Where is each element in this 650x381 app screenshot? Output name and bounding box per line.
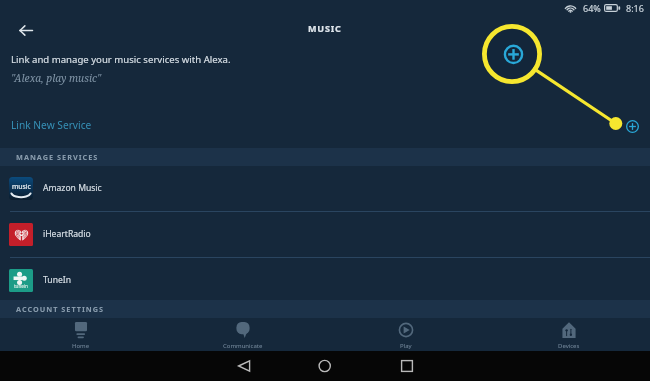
button[interactable]: Home <box>0 319 162 351</box>
staticText: "Alexa, play music" <box>11 71 102 85</box>
staticText: music <box>12 182 31 191</box>
staticText: Amazon Music <box>43 182 102 194</box>
button[interactable]: Communicate <box>162 319 324 351</box>
button[interactable]: Add music service <box>620 114 644 138</box>
button[interactable]: Devices <box>487 319 650 351</box>
button[interactable]: tunein <box>0 258 650 303</box>
button[interactable]: Back <box>14 18 38 42</box>
staticText: Link and manage your music services with… <box>11 53 231 66</box>
button[interactable]: iHeartRadio <box>0 212 650 257</box>
button[interactable]: Link New Service <box>0 117 650 133</box>
staticText: ACCOUNT SETTINGS <box>16 304 105 314</box>
staticText: MUSIC <box>308 22 342 34</box>
staticText: 8:16 <box>626 2 644 14</box>
button[interactable]: music <box>0 166 650 211</box>
staticText: Home <box>72 342 90 350</box>
staticText: iHeartRadio <box>43 228 91 240</box>
staticText: Play <box>400 342 412 350</box>
button[interactable]: Play <box>324 319 487 351</box>
staticText: tunein <box>14 283 28 289</box>
staticText: Communicate <box>223 342 263 350</box>
staticText: TuneIn <box>43 274 72 286</box>
staticText: Devices <box>558 342 580 350</box>
staticText: Link New Service <box>11 118 92 132</box>
staticText: 64% <box>583 2 601 14</box>
staticText: MANAGE SERVICES <box>16 152 99 162</box>
